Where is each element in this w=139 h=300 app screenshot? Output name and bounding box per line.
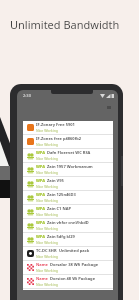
staticText: Nice Working	[36, 170, 58, 175]
button[interactable]: TC-DC SHR	[23, 247, 113, 261]
staticText: Dorsalor 38 Wfi Package	[50, 262, 99, 267]
staticText: Nice Working	[36, 212, 58, 217]
staticText: Unlimited pack	[59, 248, 90, 253]
button[interactable]: WPA	[23, 149, 113, 163]
staticText: 2:30	[23, 93, 31, 98]
staticText: Dorsion 48 Wi Package	[50, 276, 96, 281]
staticText: WPA	[36, 178, 45, 183]
button[interactable]: IF-Zones free p4860fb2	[23, 135, 113, 149]
staticText: WPA	[36, 220, 45, 225]
staticText: WPA	[36, 192, 45, 197]
button[interactable]: Name	[23, 275, 113, 289]
staticText: Name	[36, 262, 48, 267]
staticText: Nice Working	[36, 128, 58, 133]
staticText: Zain 125n46D3	[47, 192, 76, 197]
button[interactable]: WPA	[23, 163, 113, 177]
staticText: Zain V95	[47, 178, 64, 183]
staticText: WPA	[36, 150, 45, 155]
staticText: Zain 1957 Workmanum	[47, 164, 93, 169]
staticText: WPA	[36, 234, 45, 239]
button[interactable]: Name	[23, 261, 113, 275]
staticText: Nice Working	[36, 254, 58, 259]
staticText: IF-Zonary Free 5901	[36, 122, 75, 127]
staticText: Unlimited Bandwidth	[10, 17, 120, 32]
staticText: WPA	[36, 206, 45, 211]
button[interactable]: WPA	[23, 191, 113, 205]
button[interactable]: WPA	[23, 177, 113, 191]
button[interactable]: WPA	[23, 205, 113, 219]
staticText: Nice Working	[36, 240, 58, 245]
staticText: Zain vhfor cnnVhkdD	[47, 220, 89, 225]
staticText: Nice Working	[36, 226, 58, 231]
staticText: Nice Working	[36, 156, 58, 161]
staticText: Nice Working	[36, 142, 58, 147]
staticText: Dafn Floernet WC RSA	[47, 150, 91, 155]
staticText: WPA	[36, 164, 45, 169]
staticText: Nice Working	[36, 282, 58, 287]
button[interactable]: WPA	[23, 219, 113, 233]
staticText: Nice Working	[36, 198, 58, 203]
staticText: Name	[36, 276, 48, 281]
staticText: Nice Working	[36, 268, 58, 273]
button[interactable]: WPA	[23, 233, 113, 247]
staticText: TC-DC SHR	[36, 248, 57, 253]
staticText: Nice Working	[36, 184, 58, 189]
staticText: IF-Zones free p4860fb2	[36, 136, 81, 141]
staticText: Zain C1 NAP	[47, 206, 71, 211]
staticText: Zain 5dfg kl29	[47, 234, 75, 239]
button[interactable]: IF-Zonary Free 5901	[23, 121, 113, 135]
